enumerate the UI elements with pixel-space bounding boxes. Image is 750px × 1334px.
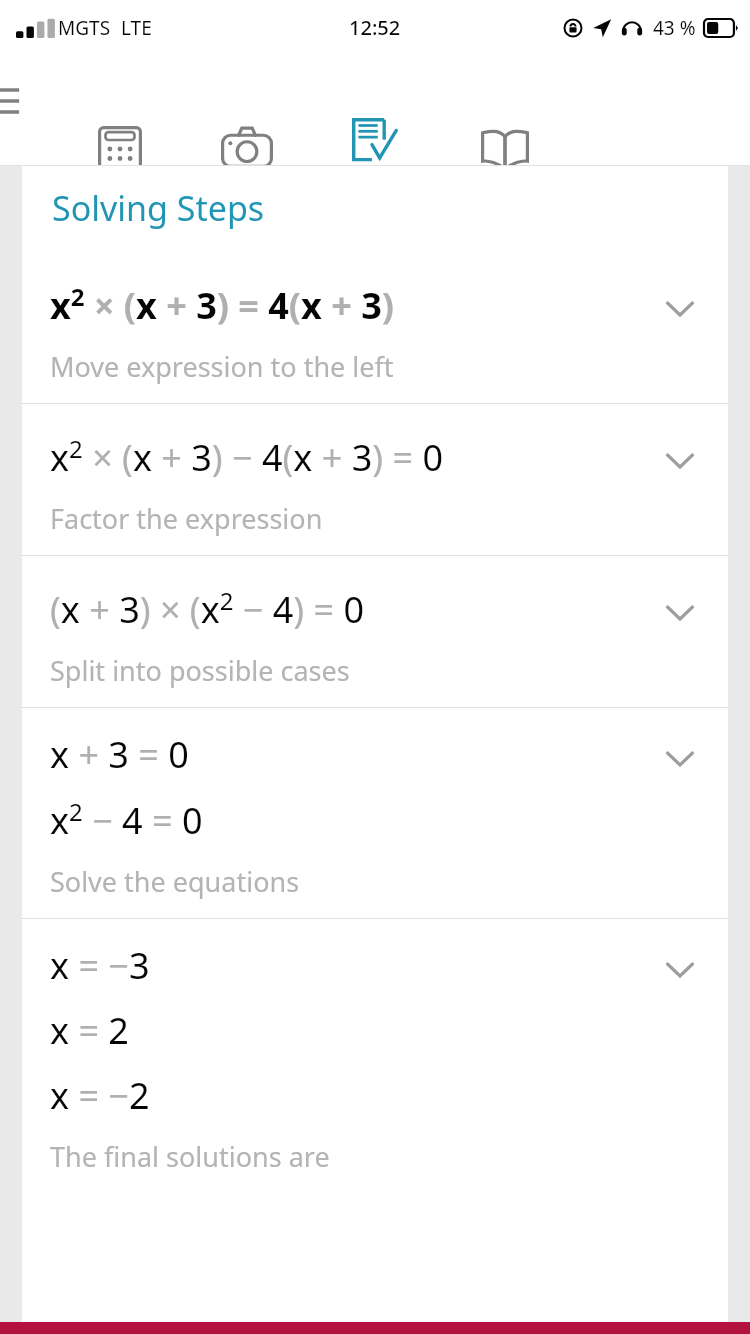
staticText: Solving Steps <box>52 185 265 231</box>
staticText: (x + 3) × (x2 − 4) = 0 <box>50 584 365 634</box>
staticText: The final solutions are <box>50 1138 330 1175</box>
staticText: Split into possible cases <box>50 652 350 689</box>
staticText: Move expression to the left <box>50 348 394 385</box>
button[interactable]: x2 × (x + 3) − 4(x + 3) = 0 <box>22 404 728 555</box>
button[interactable]: x2 × (x + 3) = 4(x + 3) <box>22 250 728 403</box>
staticText: x = −3 <box>50 941 150 990</box>
staticText: x2 × (x + 3) − 4(x + 3) = 0 <box>50 432 443 482</box>
button[interactable]: Expand step <box>632 590 728 636</box>
button[interactable]: Camera <box>212 126 282 188</box>
staticText: x = −2 <box>50 1071 150 1120</box>
button[interactable]: Expand step <box>632 286 728 332</box>
button[interactable]: Dictionary <box>470 126 540 188</box>
staticText: x = 2 <box>50 1006 129 1055</box>
staticText: Solve the equations <box>50 863 300 900</box>
button[interactable]: Calculator <box>85 126 155 188</box>
staticText: 43 % <box>653 15 696 41</box>
button[interactable]: x + 3 = 0 <box>22 708 728 918</box>
button[interactable]: x = −3 <box>22 919 728 1193</box>
button[interactable]: Menu <box>0 78 32 124</box>
button[interactable]: Expand step <box>632 736 728 782</box>
button[interactable]: Expand step <box>632 947 728 993</box>
staticText: MGTS <box>58 15 111 41</box>
staticText: Factor the expression <box>50 500 323 537</box>
staticText: x + 3 = 0 <box>50 730 189 779</box>
button[interactable]: Solution <box>312 118 438 228</box>
staticText: x2 − 4 = 0 <box>50 795 203 845</box>
button[interactable]: (x + 3) × (x2 − 4) = 0 <box>22 556 728 707</box>
button[interactable]: Expand step <box>632 438 728 484</box>
staticText: x2 × (x + 3) = 4(x + 3) <box>50 280 394 330</box>
staticText: 12:52 <box>349 14 401 41</box>
staticText: LTE <box>121 15 152 41</box>
